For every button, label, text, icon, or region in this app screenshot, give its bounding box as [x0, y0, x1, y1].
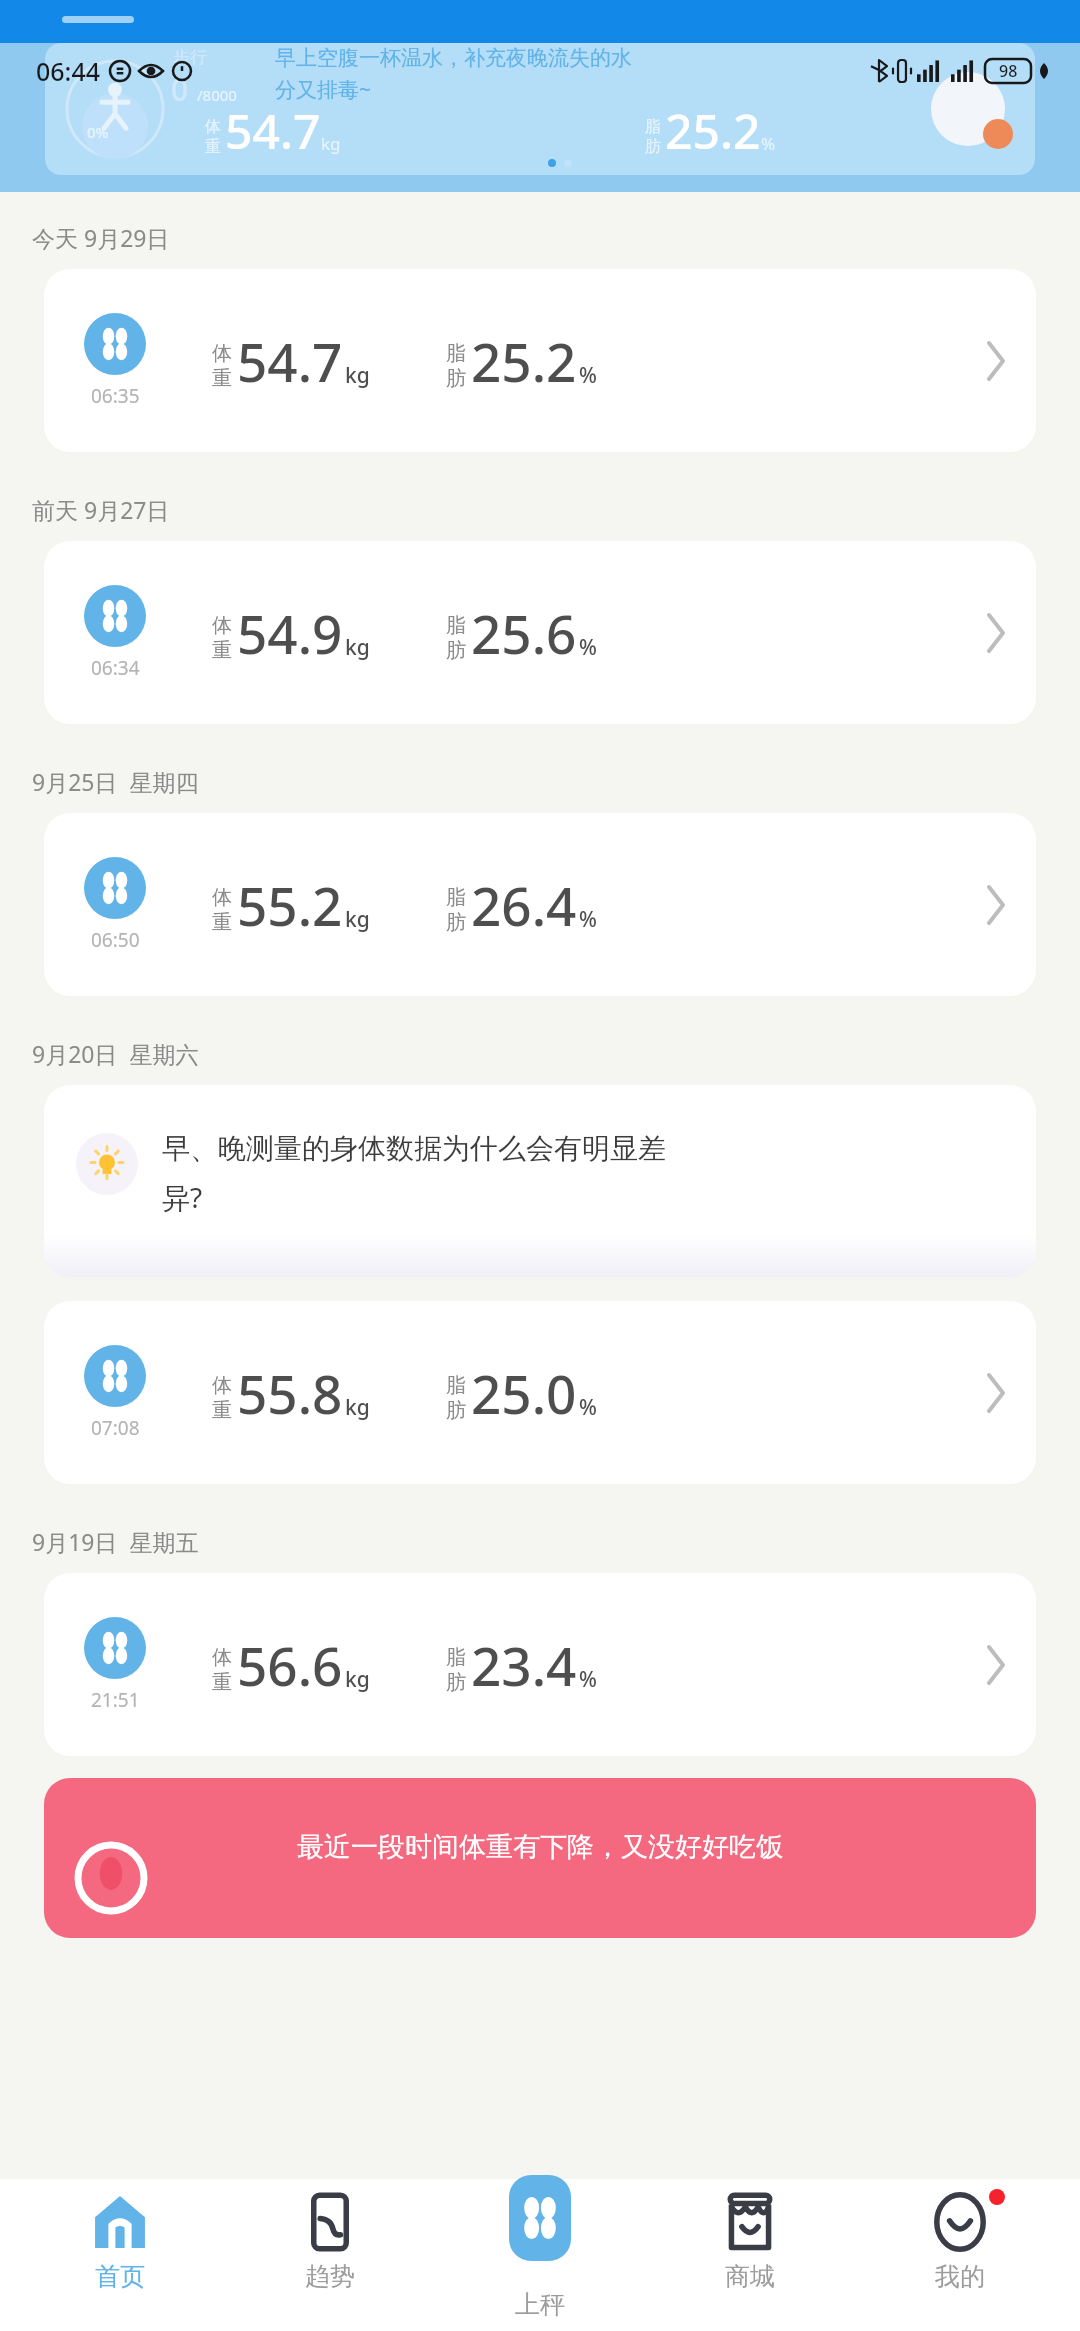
- staticText: %: [579, 361, 597, 390]
- staticText: 25.6: [471, 597, 577, 669]
- staticText: 肪: [446, 910, 466, 935]
- button[interactable]: 06:50: [44, 813, 1036, 996]
- staticText: 我的: [935, 2261, 985, 2292]
- staticText: 0: [171, 69, 189, 110]
- staticText: 重: [212, 638, 232, 663]
- staticText: 首页: [95, 2261, 145, 2292]
- staticText: 21:51: [91, 1687, 140, 1713]
- staticText: kg: [345, 905, 370, 934]
- staticText: 54.7: [225, 98, 321, 163]
- staticText: kg: [321, 132, 341, 155]
- staticText: 商城: [725, 2261, 775, 2292]
- staticText: 脂: [446, 1373, 466, 1398]
- staticText: %: [579, 905, 597, 934]
- staticText: 脂: [446, 885, 466, 910]
- staticText: 脂: [645, 117, 661, 137]
- staticText: 上秤: [515, 2289, 565, 2320]
- staticText: kg: [345, 633, 370, 662]
- staticText: 肪: [446, 366, 466, 391]
- staticText: 98: [999, 60, 1018, 82]
- staticText: 早上空腹一杯温水，补充夜晚流失的水 分又排毒~: [275, 45, 632, 103]
- staticText: 重: [212, 366, 232, 391]
- button[interactable]: 首页: [30, 2179, 210, 2331]
- staticText: 07:08: [91, 1415, 140, 1441]
- staticText: 体: [212, 1645, 232, 1670]
- staticText: 06:35: [91, 383, 140, 409]
- staticText: 体: [205, 117, 221, 137]
- staticText: 体: [212, 885, 232, 910]
- staticText: 今天 9月29日: [32, 222, 170, 253]
- staticText: 重: [212, 910, 232, 935]
- staticText: 25.2: [471, 325, 577, 397]
- staticText: 54.7: [237, 325, 343, 397]
- staticText: 肪: [446, 638, 466, 663]
- staticText: 脂: [446, 341, 466, 366]
- staticText: 肪: [446, 1670, 466, 1695]
- button[interactable]: 06:35: [44, 269, 1036, 452]
- staticText: 9月25日 星期四: [32, 766, 199, 797]
- staticText: 25.2: [665, 98, 761, 163]
- staticText: 06:44: [36, 54, 101, 88]
- staticText: 54.9: [237, 597, 343, 669]
- staticText: 重: [205, 137, 221, 157]
- staticText: 脂: [446, 613, 466, 638]
- staticText: 重: [212, 1670, 232, 1695]
- staticText: 56.6: [237, 1629, 343, 1701]
- staticText: 早、晚测量的身体数据为什么会有明显差 异?: [162, 1131, 666, 1216]
- staticText: 重: [212, 1398, 232, 1423]
- button[interactable]: 21:51: [44, 1573, 1036, 1756]
- button[interactable]: 07:08: [44, 1301, 1036, 1484]
- staticText: 9月20日 星期六: [32, 1038, 199, 1069]
- staticText: 9月19日 星期五: [32, 1526, 199, 1557]
- staticText: kg: [345, 361, 370, 390]
- staticText: 体: [212, 613, 232, 638]
- button[interactable]: 06:34: [44, 541, 1036, 724]
- staticText: 趋势: [305, 2261, 355, 2292]
- staticText: %: [579, 1393, 597, 1422]
- staticText: 体: [212, 1373, 232, 1398]
- staticText: 最近一段时间体重有下降，又没好好吃饭: [297, 1830, 783, 1864]
- staticText: 肪: [446, 1398, 466, 1423]
- staticText: /8000: [197, 85, 237, 105]
- staticText: 26.4: [471, 869, 577, 941]
- staticText: 55.8: [237, 1357, 343, 1429]
- staticText: 肪: [645, 137, 661, 157]
- staticText: kg: [345, 1665, 370, 1694]
- staticText: 06:34: [91, 655, 140, 681]
- staticText: kg: [345, 1393, 370, 1422]
- staticText: 23.4: [471, 1629, 577, 1701]
- staticText: 06:50: [91, 927, 140, 953]
- staticText: %: [579, 1665, 597, 1694]
- staticText: %: [579, 633, 597, 662]
- staticText: 体: [212, 341, 232, 366]
- button[interactable]: 早、晚测量的身体数据为什么会有明显差 异?: [44, 1085, 1036, 1277]
- staticText: 步行: [173, 47, 207, 68]
- button[interactable]: 我的: [870, 2179, 1050, 2331]
- staticText: 脂: [446, 1645, 466, 1670]
- staticText: %: [761, 132, 776, 155]
- staticText: 25.0: [471, 1357, 577, 1429]
- button[interactable]: 趋势: [240, 2179, 420, 2331]
- button[interactable]: 商城: [660, 2179, 840, 2331]
- staticText: 前天 9月27日: [32, 494, 170, 525]
- staticText: 0%: [87, 122, 109, 142]
- staticText: 55.2: [237, 869, 343, 941]
- button[interactable]: 上秤: [450, 2179, 630, 2331]
- button[interactable]: 最近一段时间体重有下降，又没好好吃饭: [44, 1778, 1036, 1938]
